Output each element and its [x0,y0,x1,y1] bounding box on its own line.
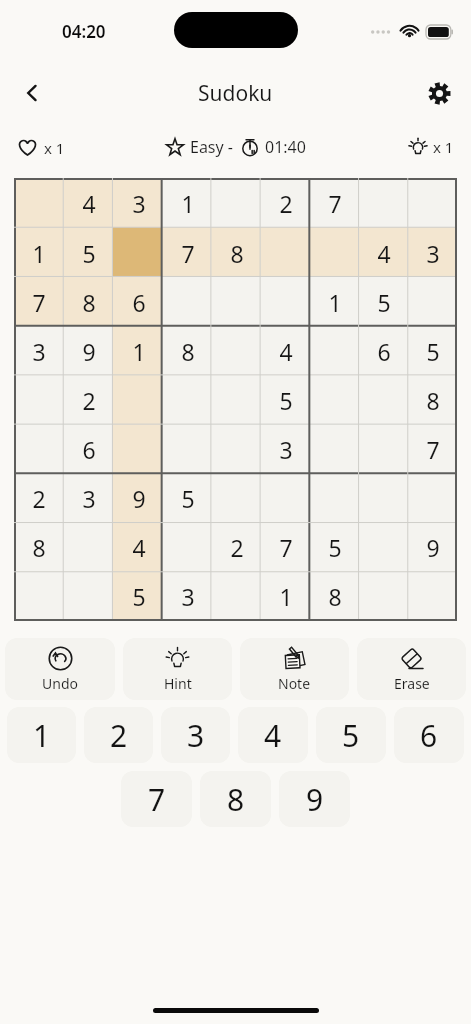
button[interactable]: 8 [212,228,261,278]
button[interactable]: 6 [359,327,408,376]
button[interactable] [359,178,408,228]
button[interactable]: 8 [408,376,457,425]
button[interactable]: 3 [161,707,230,763]
button[interactable]: 2 [14,474,64,523]
button[interactable]: 5 [261,376,310,425]
staticText: 3 [82,483,96,514]
button[interactable]: Undo [5,638,115,700]
button[interactable] [310,228,359,278]
button[interactable] [212,474,261,523]
button[interactable]: 5 [316,707,386,763]
button[interactable]: 1 [310,278,359,327]
button[interactable]: 8 [64,278,114,327]
button[interactable]: 3 [64,474,114,523]
button[interactable]: 4 [261,327,310,376]
button[interactable]: 2 [84,707,153,763]
button[interactable]: 1 [7,707,76,763]
button[interactable] [408,474,457,523]
button[interactable] [64,523,114,572]
button[interactable]: Back [8,69,56,117]
button[interactable] [14,572,64,621]
button[interactable]: 8 [163,327,212,376]
button[interactable]: 6 [114,278,163,327]
button[interactable]: 2 [64,376,114,425]
button[interactable]: 5 [359,278,408,327]
button[interactable] [114,228,163,278]
button[interactable]: 2 [261,178,310,228]
button[interactable]: 1 [163,178,212,228]
button[interactable]: 7 [163,228,212,278]
button[interactable]: 8 [200,771,271,827]
button[interactable]: 3 [261,425,310,474]
button[interactable]: 6 [64,425,114,474]
button[interactable] [114,425,163,474]
button[interactable]: 7 [121,771,192,827]
button[interactable] [310,474,359,523]
button[interactable] [212,425,261,474]
button[interactable]: 2 [212,523,261,572]
button[interactable]: 7 [261,523,310,572]
button[interactable]: 9 [408,523,457,572]
button[interactable]: 3 [163,572,212,621]
button[interactable]: 7 [408,425,457,474]
button[interactable]: 1 [114,327,163,376]
button[interactable] [310,425,359,474]
button[interactable]: 4 [64,178,114,228]
button[interactable]: 6 [394,707,464,763]
button[interactable]: 9 [64,327,114,376]
button[interactable] [408,178,457,228]
button[interactable]: Erase [357,638,466,700]
button[interactable]: 5 [64,228,114,278]
button[interactable]: 5 [310,523,359,572]
button[interactable]: 1 [261,572,310,621]
button[interactable]: 5 [114,572,163,621]
button[interactable]: 9 [279,771,350,827]
button[interactable] [212,278,261,327]
button[interactable]: 3 [408,228,457,278]
button[interactable]: 4 [238,707,308,763]
button[interactable] [14,376,64,425]
button[interactable] [310,327,359,376]
button[interactable] [212,327,261,376]
staticText: 8 [32,532,46,563]
staticText: 8 [328,581,342,612]
button[interactable] [261,278,310,327]
button[interactable] [212,572,261,621]
button[interactable]: 8 [14,523,64,572]
button[interactable] [261,474,310,523]
button[interactable] [64,572,114,621]
button[interactable] [163,278,212,327]
button[interactable]: 3 [14,327,64,376]
button[interactable] [408,278,457,327]
button[interactable] [359,376,408,425]
button[interactable]: 8 [310,572,359,621]
button[interactable]: 7 [310,178,359,228]
button[interactable] [212,376,261,425]
button[interactable] [163,425,212,474]
button[interactable]: 4 [359,228,408,278]
button[interactable]: 5 [163,474,212,523]
button[interactable]: Hint [123,638,232,700]
button[interactable]: 7 [14,278,64,327]
button[interactable]: 4 [114,523,163,572]
button[interactable] [114,376,163,425]
button[interactable] [359,425,408,474]
button[interactable] [163,523,212,572]
button[interactable] [359,474,408,523]
button[interactable] [359,572,408,621]
button[interactable] [310,376,359,425]
staticText: 6 [420,715,438,756]
button[interactable]: 1 [14,228,64,278]
button[interactable] [359,523,408,572]
button[interactable]: 3 [114,178,163,228]
button[interactable] [408,572,457,621]
button[interactable] [261,228,310,278]
button[interactable]: Note [240,638,349,700]
button[interactable] [212,178,261,228]
button[interactable] [163,376,212,425]
button[interactable]: Settings [415,69,463,117]
button[interactable]: 9 [114,474,163,523]
button[interactable] [14,425,64,474]
button[interactable] [14,178,64,228]
button[interactable]: 5 [408,327,457,376]
